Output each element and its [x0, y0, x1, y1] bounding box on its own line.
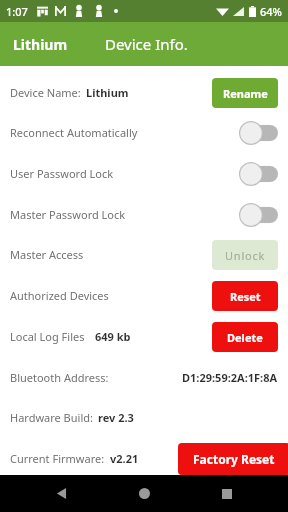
staticText: 64% — [260, 4, 282, 19]
staticText: D1:29:59:2A:1F:8A — [182, 370, 278, 385]
staticText: Device Name: — [10, 85, 81, 100]
staticText: Reset — [230, 289, 261, 304]
staticText: Authorized Devices — [10, 288, 109, 303]
button[interactable]: Delete — [212, 322, 278, 352]
staticText: Bluetooth Address: — [10, 370, 109, 385]
button[interactable]: Reconnect Automatically toggle — [238, 120, 278, 146]
staticText: Hardware Build: — [10, 410, 93, 425]
staticText: Delete — [227, 330, 263, 345]
button[interactable]: Back — [39, 475, 83, 512]
staticText: Master Access — [10, 247, 84, 262]
button[interactable]: Device Info. — [105, 34, 188, 54]
staticText: 1:07 — [6, 4, 28, 19]
staticText: Current Firmware: — [10, 451, 105, 466]
button[interactable]: Recent apps — [205, 475, 249, 512]
staticText: User Password Lock — [10, 166, 114, 181]
staticText: Unlock — [225, 248, 266, 263]
staticText: 649 kb — [95, 329, 131, 344]
staticText: Master Password Lock — [10, 207, 126, 222]
staticText: Lithium — [86, 85, 129, 100]
staticText: Reconnect Automatically — [10, 125, 138, 140]
button[interactable]: Home — [122, 475, 166, 512]
staticText: Factory Reset — [193, 451, 275, 467]
staticText: Rename — [223, 86, 268, 101]
button[interactable]: Rename — [212, 78, 278, 108]
button[interactable]: Master Password Lock toggle — [238, 202, 278, 228]
button[interactable]: Factory Reset — [178, 443, 288, 475]
button[interactable]: Unlock — [212, 240, 278, 270]
button[interactable]: Lithium — [13, 35, 68, 54]
staticText: rev 2.3 — [98, 410, 134, 425]
button[interactable]: User Password Lock toggle — [238, 161, 278, 187]
button[interactable]: Reset — [212, 281, 278, 311]
staticText: v2.21 — [110, 451, 139, 466]
staticText: Local Log Files — [10, 329, 85, 344]
